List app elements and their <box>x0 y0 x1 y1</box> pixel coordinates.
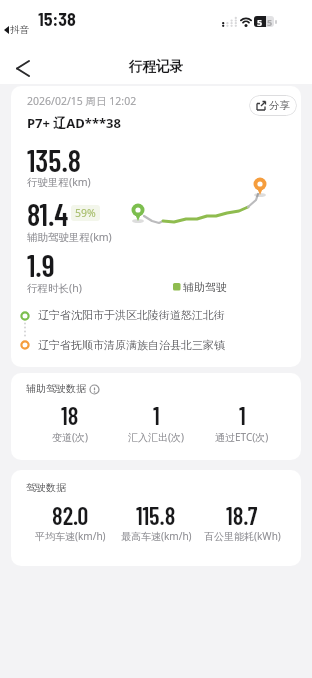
staticText: 平均车速(km/h) <box>35 529 106 543</box>
staticText: 15:38 <box>38 8 76 30</box>
staticText: 驾驶数据 <box>26 481 66 494</box>
staticText: 辅助驾驶数据 <box>26 382 86 395</box>
staticText: 1.9 <box>27 246 55 283</box>
staticText: 18 <box>61 400 79 429</box>
staticText: 18.7 <box>226 500 258 529</box>
staticText: 1 <box>239 400 246 429</box>
staticText: 5 <box>267 16 273 27</box>
button[interactable] <box>8 54 36 82</box>
staticText: 汇入汇出(次) <box>128 430 184 444</box>
staticText: 百公里能耗(kWh) <box>204 529 281 543</box>
staticText: 行驶里程(km) <box>27 175 91 189</box>
staticText: 1 <box>153 400 160 429</box>
staticText: 最高车速(km/h) <box>121 529 192 543</box>
staticText: P7+ 辽AD***38 <box>27 114 121 132</box>
button[interactable]: 抖音 <box>4 24 29 36</box>
staticText: 辽宁省抚顺市清原满族自治县北三家镇 <box>38 338 225 352</box>
staticText: 81.4 <box>27 195 69 232</box>
staticText: 行程记录 <box>129 58 183 75</box>
staticText: 分享 <box>269 99 290 112</box>
staticText: 辅助驾驶里程(km) <box>27 230 112 244</box>
staticText: 行程时长(h) <box>27 281 82 295</box>
button[interactable]: 分享 <box>249 95 297 116</box>
staticText: 抖音 <box>10 24 29 36</box>
staticText: 59% <box>75 206 96 220</box>
staticText: 115.8 <box>136 500 176 529</box>
staticText: 通过ETC(次) <box>215 430 269 444</box>
staticText: 82.0 <box>52 500 89 529</box>
staticText: 变道(次) <box>52 430 88 444</box>
staticText: 135.8 <box>27 141 82 178</box>
staticText: 2026/02/15 周日 12:02 <box>27 94 137 108</box>
staticText: 5 <box>257 16 263 27</box>
staticText: 辽宁省沈阳市于洪区北陵街道怒江北街 <box>38 308 225 322</box>
staticText: 辅助驾驶 <box>183 280 227 294</box>
